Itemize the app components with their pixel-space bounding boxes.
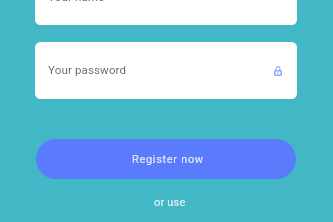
staticText: or use: [154, 196, 186, 209]
button[interactable]: Your name: [35, 0, 297, 25]
button[interactable]: Toggle password visibility: [269, 57, 297, 85]
button[interactable]: Register now: [36, 139, 296, 179]
staticText: Your password: [48, 63, 127, 76]
staticText: Register now: [132, 153, 204, 166]
button[interactable]: Your password: [35, 42, 297, 99]
staticText: Your name: [48, 0, 105, 3]
